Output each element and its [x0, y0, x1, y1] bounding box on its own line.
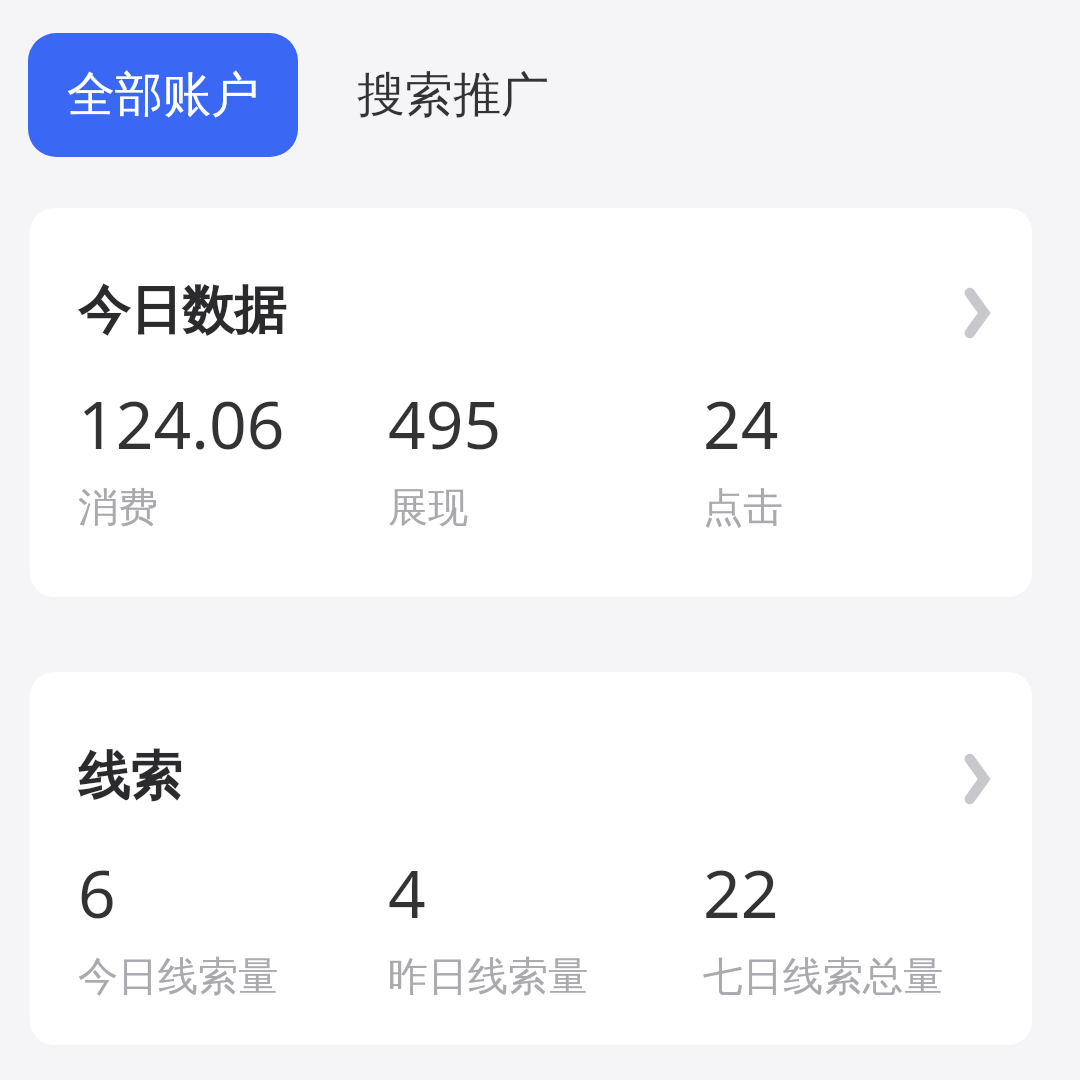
staticText: 消费: [78, 482, 158, 532]
staticText: 4: [388, 847, 426, 937]
staticText: 搜索推广: [357, 65, 549, 125]
button[interactable]: 线索详情: [30, 672, 1032, 1045]
staticText: 22: [703, 847, 779, 937]
staticText: 495: [388, 378, 502, 468]
button[interactable]: 全部账户: [28, 33, 298, 157]
staticText: 线索: [78, 744, 182, 810]
button[interactable]: 搜索推广: [355, 33, 551, 157]
staticText: 6: [78, 847, 116, 937]
staticText: 七日线索总量: [703, 951, 943, 1001]
staticText: 点击: [703, 482, 783, 532]
staticText: 24: [703, 378, 779, 468]
staticText: 昨日线索量: [388, 951, 588, 1001]
staticText: 展现: [388, 482, 468, 532]
button[interactable]: 今日数据详情: [30, 208, 1032, 597]
staticText: 124.06: [78, 378, 285, 468]
staticText: 今日数据: [78, 278, 286, 344]
staticText: 今日线索量: [78, 951, 278, 1001]
staticText: 全部账户: [67, 65, 259, 125]
